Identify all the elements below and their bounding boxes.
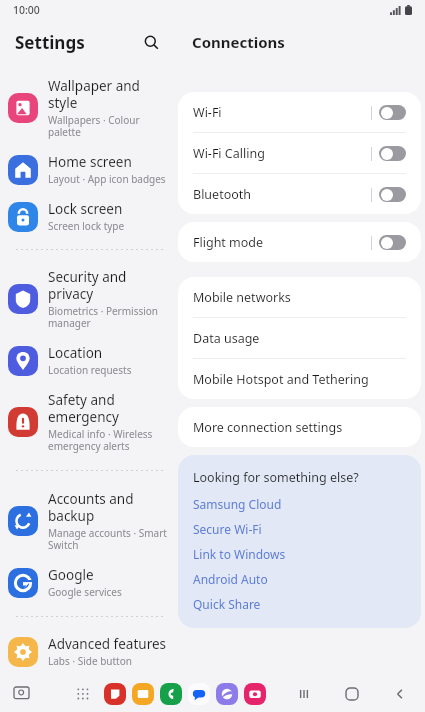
staticText: Wallpapers · Colour palette — [48, 113, 168, 139]
button[interactable]: Messages — [188, 683, 210, 705]
button[interactable]: Quick Share — [193, 596, 261, 612]
button[interactable]: Phone — [160, 683, 182, 705]
staticText: Samsung Cloud — [193, 496, 282, 512]
staticText: Safety and emergency — [48, 391, 168, 426]
button[interactable]: Internet — [216, 683, 238, 705]
button[interactable]: Safety and emergency — [0, 384, 178, 460]
staticText: Quick Share — [193, 596, 261, 612]
staticText: 10:00 — [13, 3, 40, 17]
button[interactable]: Data usage — [178, 318, 421, 358]
button[interactable]: Location — [0, 337, 178, 384]
staticText: Flight mode — [193, 234, 371, 251]
staticText: Link to Windows — [193, 546, 286, 562]
staticText: Lock screen — [48, 200, 123, 218]
button[interactable]: Search — [138, 29, 164, 55]
button[interactable]: Google — [0, 559, 178, 606]
button[interactable]: Wi-Fi Calling — [178, 133, 421, 173]
button[interactable]: Mobile Hotspot and Tethering — [178, 359, 421, 399]
button[interactable]: Samsung Notes — [104, 683, 126, 705]
staticText: Medical info · Wireless emergency alerts — [48, 427, 168, 453]
button[interactable]: Back — [387, 681, 413, 707]
staticText: Wallpaper and style — [48, 77, 168, 112]
button[interactable]: Accounts and backup — [0, 483, 178, 559]
button[interactable]: Security and privacy — [0, 261, 178, 337]
staticText: Labs · Side button — [48, 654, 132, 668]
staticText: Bluetooth — [193, 186, 371, 203]
staticText: Google services — [48, 585, 122, 599]
staticText: Looking for something else? — [193, 469, 359, 486]
button[interactable]: More connection settings — [178, 407, 421, 447]
staticText: Android Auto — [193, 571, 268, 587]
button[interactable]: Samsung Cloud — [193, 496, 282, 512]
staticText: Settings — [15, 31, 85, 54]
staticText: Screen lock type — [48, 219, 125, 233]
staticText: Location — [48, 344, 103, 362]
staticText: Mobile networks — [193, 289, 291, 306]
button[interactable]: Android Auto — [193, 571, 268, 587]
button[interactable]: Flight mode — [178, 222, 421, 262]
staticText: Location requests — [48, 363, 132, 377]
button[interactable]: Mobile networks — [178, 277, 421, 317]
staticText: More connection settings — [193, 419, 343, 436]
button[interactable]: Home screen — [0, 146, 178, 193]
staticText: Security and privacy — [48, 268, 168, 303]
staticText: Wi-Fi Calling — [193, 145, 371, 162]
button[interactable]: Wallpaper and style — [0, 70, 178, 146]
staticText: Advanced features — [48, 635, 167, 653]
staticText: Accounts and backup — [48, 490, 168, 525]
button[interactable]: Apps — [72, 683, 94, 705]
button[interactable]: Secure Wi-Fi — [193, 521, 262, 537]
staticText: Biometrics · Permission manager — [48, 304, 168, 330]
staticText: Secure Wi-Fi — [193, 521, 262, 537]
button[interactable]: Camera — [244, 683, 266, 705]
staticText: Layout · App icon badges — [48, 172, 166, 186]
button[interactable]: My Files — [132, 683, 154, 705]
staticText: Google — [48, 566, 94, 584]
button[interactable]: Bluetooth — [178, 174, 421, 214]
staticText: Manage accounts · Smart Switch — [48, 526, 168, 552]
staticText: Wi-Fi — [193, 104, 371, 121]
button[interactable]: Lock screen — [0, 193, 178, 240]
button[interactable]: Advanced features — [0, 628, 178, 675]
button[interactable]: Recent screen — [10, 683, 32, 705]
button[interactable]: Recents — [291, 681, 317, 707]
staticText: Home screen — [48, 153, 132, 171]
button[interactable]: Home — [339, 681, 365, 707]
staticText: Mobile Hotspot and Tethering — [193, 371, 369, 388]
button[interactable]: Link to Windows — [193, 546, 286, 562]
staticText: Connections — [192, 32, 285, 52]
button[interactable]: Wi-Fi — [178, 92, 421, 132]
staticText: Data usage — [193, 330, 260, 347]
